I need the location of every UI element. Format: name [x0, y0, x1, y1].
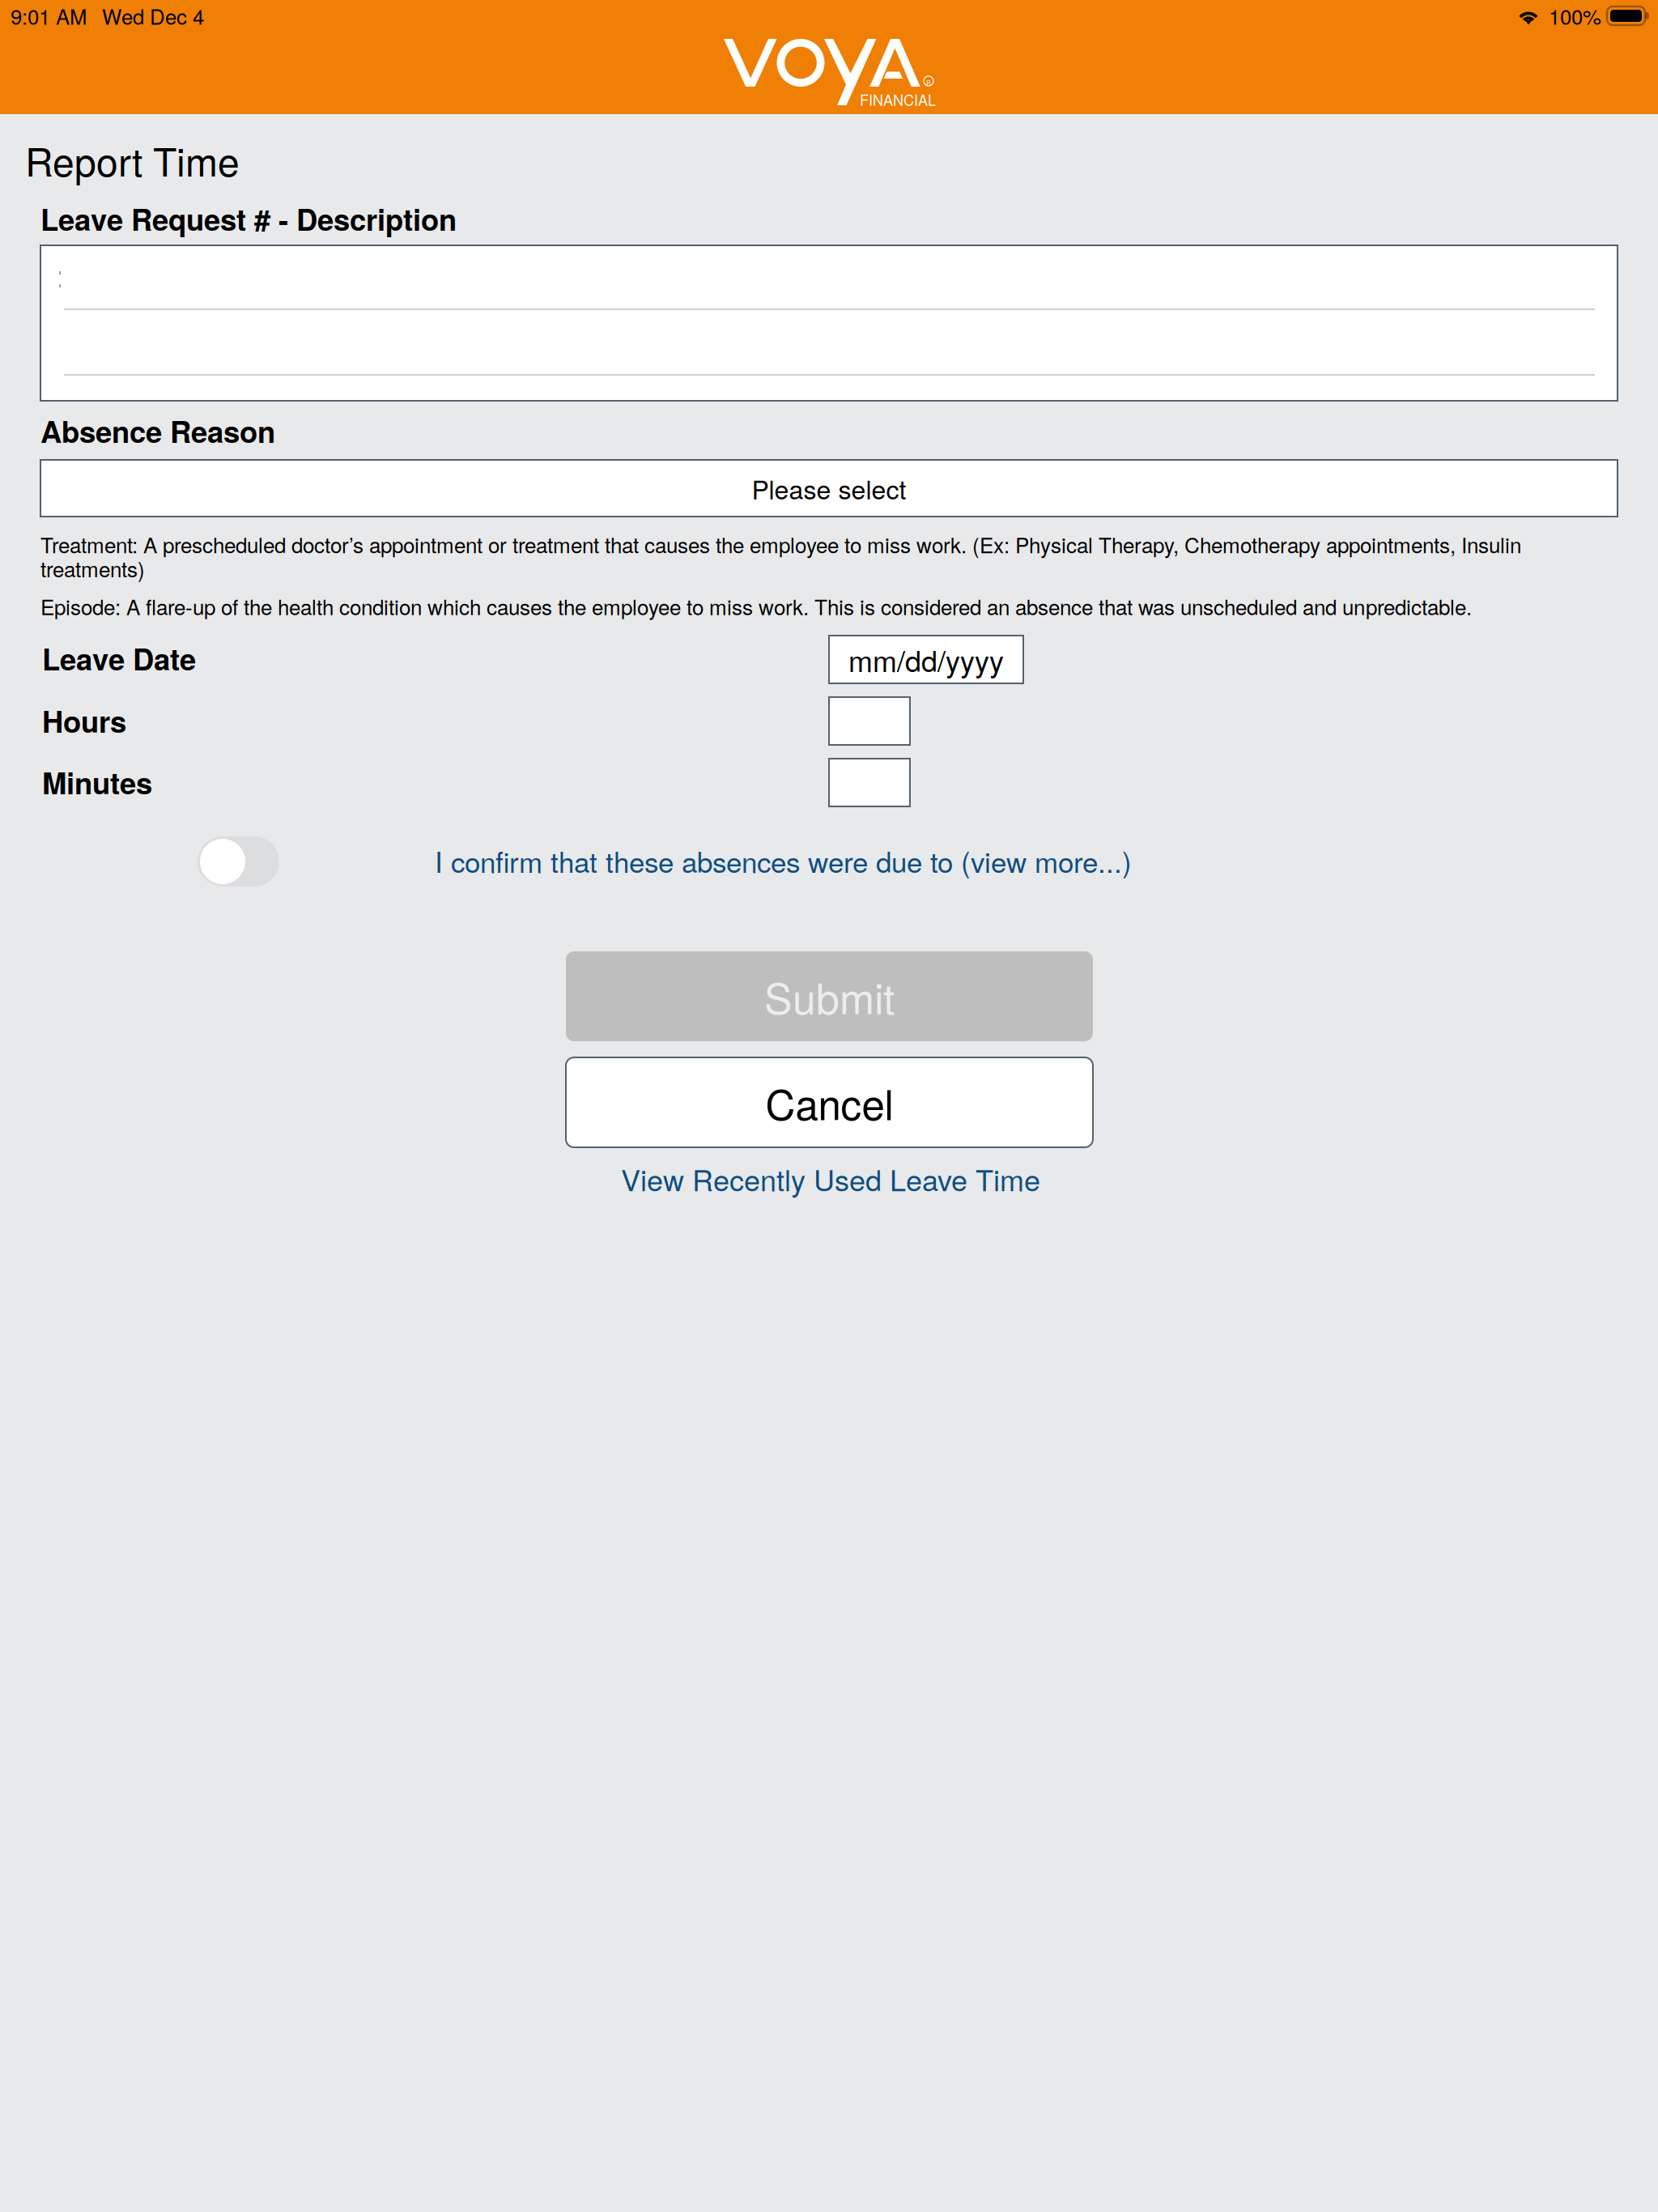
staticText: Wed Dec 4: [102, 1, 204, 31]
staticText: I confirm that these absences were due t…: [435, 840, 1132, 881]
button[interactable]: Hours: [829, 697, 910, 745]
staticText: 9:01 AM: [11, 1, 87, 31]
staticText: mm/dd/yyyy: [848, 639, 1004, 680]
staticText: Please select: [752, 470, 906, 507]
staticText: Leave Request # - Description: [40, 198, 457, 240]
staticText: View Recently Used Leave Time: [621, 1158, 1040, 1200]
button[interactable]: I confirm that these absences were due t…: [435, 840, 1132, 881]
staticText: Hours: [42, 700, 126, 742]
staticText: Cancel: [765, 1073, 893, 1132]
staticText: Episode: A flare-up of the health condit…: [40, 591, 1472, 621]
button[interactable]: Submit: [566, 951, 1093, 1041]
staticText: Leave Date: [42, 637, 196, 679]
staticText: R: [926, 78, 930, 87]
staticText: Treatment: A prescheduled doctor’s appoi…: [40, 532, 1521, 580]
staticText: Report Time: [25, 132, 240, 188]
button[interactable]: Minutes: [829, 759, 910, 806]
staticText: Minutes: [42, 761, 152, 803]
staticText: Submit: [764, 966, 895, 1026]
button[interactable]: Please select: [40, 460, 1618, 517]
button[interactable]: Leave Request # - Description: [40, 245, 1618, 401]
button[interactable]: Confirm absences toggle: [198, 836, 279, 887]
staticText: 100%: [1549, 1, 1601, 31]
button[interactable]: mm/dd/yyyy: [829, 636, 1023, 683]
staticText: Absence Reason: [40, 410, 275, 452]
staticText: FINANCIAL: [860, 89, 936, 110]
button[interactable]: Cancel: [566, 1057, 1093, 1147]
button[interactable]: View Recently Used Leave Time: [621, 1158, 1040, 1200]
